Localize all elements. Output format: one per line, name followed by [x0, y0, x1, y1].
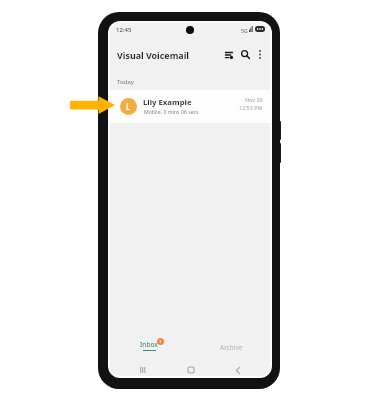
- button[interactable]: Filter: [221, 38, 237, 71]
- staticText: Inbox: [140, 340, 158, 349]
- staticText: 1: [159, 339, 162, 345]
- button[interactable]: Archive: [190, 332, 272, 358]
- staticText: L: [126, 101, 131, 112]
- button[interactable]: Search: [237, 38, 253, 71]
- staticText: Archive: [220, 343, 243, 352]
- staticText: Lily Example: [143, 97, 192, 108]
- staticText: Mobile, 0 mins 06 secs: [144, 108, 199, 115]
- button[interactable]: Inbox: [108, 332, 190, 358]
- staticText: Today: [117, 78, 134, 86]
- button[interactable]: More options: [252, 38, 268, 71]
- staticText: 12:53 PM: [239, 104, 263, 111]
- button[interactable]: L: [108, 90, 272, 123]
- staticText: Nov 20: [245, 96, 263, 103]
- staticText: 12:45: [116, 26, 132, 34]
- staticText: Visual Voicemail: [117, 49, 189, 61]
- staticText: 5G: [241, 27, 248, 34]
- button[interactable]: Back: [229, 361, 247, 378]
- button[interactable]: Recents: [133, 361, 151, 378]
- button[interactable]: Home: [182, 361, 200, 378]
